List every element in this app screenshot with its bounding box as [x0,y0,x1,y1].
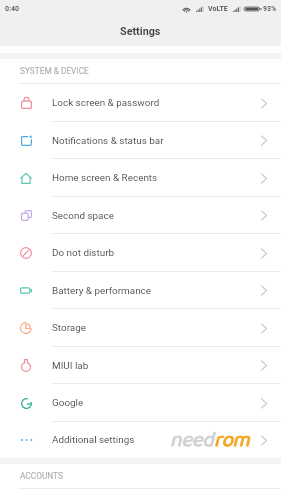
staticText: Notifications & status bar [52,135,164,147]
staticText: VoLTE [208,5,228,13]
staticText: ACCOUNTS [20,471,63,481]
staticText: 93% [263,5,277,13]
staticText: Lock screen & password [52,97,160,109]
button[interactable]: Do not disturb [0,234,281,272]
staticText: Battery & performance [52,285,152,297]
staticText: Settings [120,25,161,38]
other: Google [21,398,32,409]
staticText: Second space [52,210,114,222]
staticText: Storage [52,322,86,334]
other: Home screen [20,173,32,184]
button[interactable]: Additional settings [0,422,281,458]
button[interactable]: Battery [0,272,281,309]
staticText: Home screen & Recents [52,172,158,184]
button[interactable]: Second space [0,197,281,234]
other: Storage [20,322,32,334]
button[interactable]: Google [0,384,281,422]
staticText: 0:40 [5,5,20,13]
button[interactable]: Storage [0,309,281,347]
other: MIUI lab [21,359,31,372]
button[interactable]: Lock [0,84,281,122]
staticText: SYSTEM & DEVICE [20,66,89,76]
staticText: rom [214,423,250,457]
other: Lock [21,97,32,109]
button[interactable]: Home screen [0,159,281,197]
other: Do not disturb [20,247,32,259]
other: Battery [20,286,32,295]
button[interactable]: Notifications [0,122,281,159]
staticText: Google [52,397,84,409]
staticText: Do not disturb [52,247,115,259]
staticText: Additional settings [52,434,135,446]
other: Additional settings [21,438,32,442]
other: Notifications [21,135,32,146]
staticText: MIUI lab [52,360,89,372]
button[interactable]: MIUI lab [0,347,281,384]
staticText: need [170,423,214,457]
other: Second space [21,210,32,221]
